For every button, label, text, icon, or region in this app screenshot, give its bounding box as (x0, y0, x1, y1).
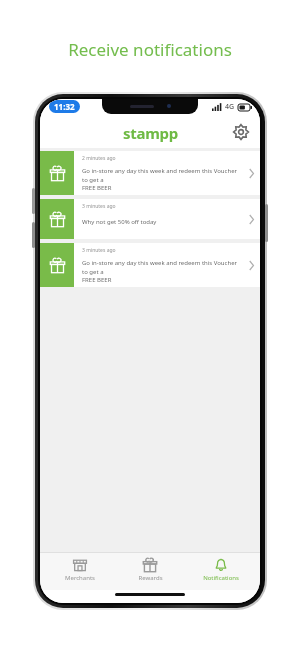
button[interactable]: 3 minutes ago (40, 199, 260, 239)
staticText: FREE BEER (82, 276, 112, 284)
staticText: 3 minutes ago (82, 203, 116, 210)
staticText: 2 minutes ago (82, 155, 116, 162)
staticText: 4G (225, 102, 235, 112)
staticText: 11:32 (54, 101, 75, 112)
staticText: Go in-store any day this week and redeem… (82, 167, 238, 184)
staticText: Merchants (65, 574, 95, 582)
button[interactable]: Merchants (49, 552, 111, 590)
button[interactable]: 2 minutes ago (40, 151, 260, 195)
staticText: Go in-store any day this week and redeem… (82, 259, 238, 276)
button[interactable]: 3 minutes ago (40, 243, 260, 287)
staticText: Why not get 50% off today (82, 218, 157, 226)
staticText: Notifications (203, 574, 239, 582)
staticText: Receive notifications (68, 38, 232, 61)
button[interactable]: Settings (230, 121, 252, 143)
staticText: Rewards (138, 574, 163, 582)
button[interactable]: Rewards (119, 552, 181, 590)
staticText: FREE BEER (82, 184, 112, 192)
staticText: stampp (123, 123, 178, 143)
staticText: 3 minutes ago (82, 247, 116, 254)
button[interactable]: Notifications (190, 552, 252, 590)
